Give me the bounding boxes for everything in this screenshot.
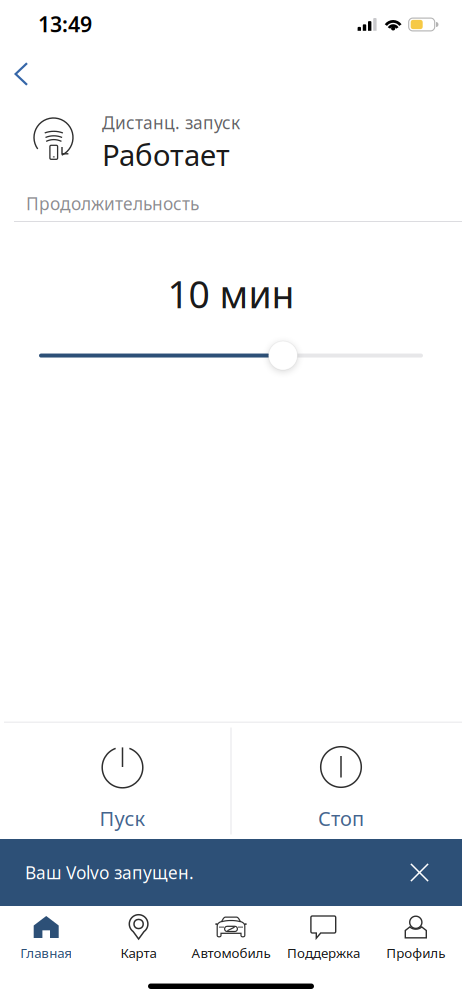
button[interactable]: Карта (92, 906, 185, 968)
staticText: Профиль (386, 944, 445, 962)
staticText: Ваш Volvo запущен. (25, 861, 194, 884)
staticText: Автомобиль (191, 944, 270, 962)
staticText: Дистанц. запуск (102, 111, 240, 134)
button[interactable]: Автомобиль (185, 906, 277, 968)
staticText: Пуск (99, 805, 145, 832)
button[interactable]: Профиль (370, 906, 462, 968)
button[interactable]: Back (0, 54, 45, 94)
button[interactable]: Стоп (231, 723, 462, 839)
staticText: Главная (20, 944, 72, 962)
staticText: Работает (102, 135, 230, 174)
button[interactable]: Пуск (0, 723, 231, 839)
staticText: Поддержка (287, 944, 360, 962)
staticText: Стоп (318, 805, 364, 832)
staticText: Продолжительность (26, 192, 199, 215)
staticText: Карта (121, 944, 157, 962)
staticText: 10 мин (167, 269, 294, 319)
button[interactable]: Поддержка (277, 906, 370, 968)
button[interactable]: Главная (0, 906, 92, 968)
button[interactable]: Close (399, 852, 440, 893)
staticText: 13:49 (38, 10, 92, 38)
